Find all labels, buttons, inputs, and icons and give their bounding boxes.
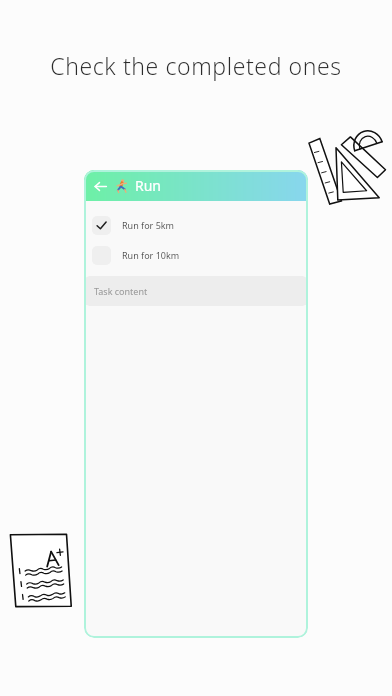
- staticText: Task content: [94, 285, 148, 297]
- staticText: Run for 5km: [122, 219, 175, 231]
- button[interactable]: Run for 5km: [84, 214, 308, 236]
- button[interactable]: Back: [90, 176, 110, 196]
- staticText: Run: [135, 176, 162, 195]
- button[interactable]: Task content: [84, 276, 308, 306]
- staticText: Run for 10km: [122, 249, 180, 261]
- button[interactable]: Run for 10km: [84, 244, 308, 266]
- staticText: Check the completed ones: [0, 50, 392, 81]
